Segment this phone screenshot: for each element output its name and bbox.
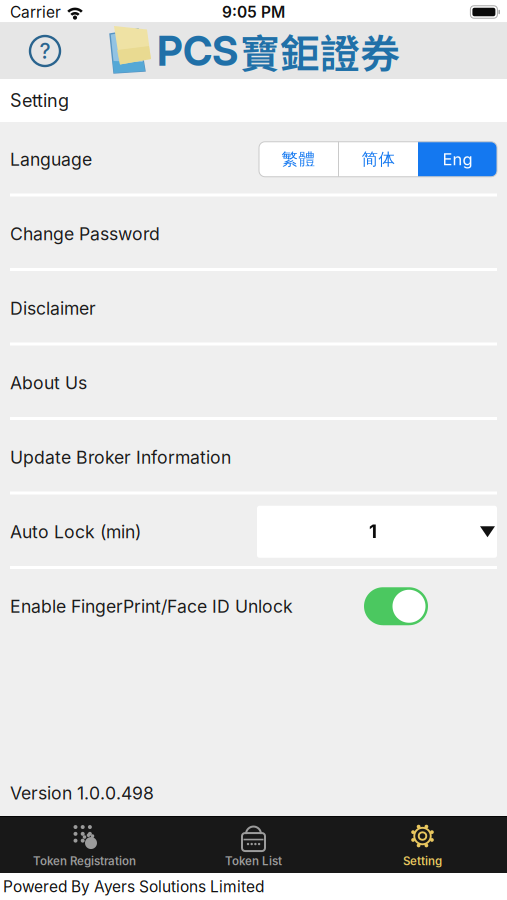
- staticText: Eng: [442, 149, 472, 169]
- button[interactable]: Token Registration: [0, 816, 169, 873]
- button[interactable]: Auto Lock minutes: [257, 506, 497, 558]
- staticText: Token List: [225, 854, 282, 868]
- staticText: Version 1.0.0.498: [10, 782, 154, 804]
- staticText: About Us: [10, 372, 87, 393]
- staticText: Setting: [10, 90, 69, 111]
- staticText: Token Registration: [33, 854, 136, 868]
- button[interactable]: Setting: [338, 816, 507, 873]
- button[interactable]: Token List: [169, 816, 338, 873]
- button[interactable]: 简体: [339, 142, 418, 177]
- staticText: Enable FingerPrint/Face ID Unlock: [10, 596, 293, 617]
- staticText: ?: [39, 38, 50, 64]
- staticText: Disclaimer: [10, 298, 96, 319]
- button[interactable]: Change Password: [0, 196, 507, 271]
- staticText: Change Password: [10, 223, 160, 244]
- button[interactable]: Update Broker Information: [0, 420, 507, 494]
- staticText: PCS: [157, 26, 238, 75]
- staticText: Language: [10, 149, 92, 170]
- staticText: 简体: [361, 149, 395, 170]
- button[interactable]: Disclaimer: [0, 271, 507, 345]
- staticText: Powered By Ayers Solutions Limited: [3, 877, 264, 896]
- staticText: 繁體: [281, 149, 315, 170]
- button[interactable]: About Us: [0, 345, 507, 420]
- staticText: 寶鉅證券: [240, 22, 400, 80]
- staticText: Setting: [403, 854, 442, 868]
- staticText: 1: [369, 521, 377, 543]
- button[interactable]: 繁體: [259, 142, 338, 177]
- staticText: 9:05 PM: [222, 3, 285, 21]
- button[interactable]: Enable FingerPrint/Face ID Unlock: [364, 587, 428, 625]
- button[interactable]: Help: [26, 32, 64, 70]
- staticText: Carrier: [10, 3, 61, 21]
- staticText: Auto Lock (min): [10, 521, 141, 542]
- button[interactable]: Eng: [418, 142, 497, 177]
- staticText: Update Broker Information: [10, 447, 231, 468]
